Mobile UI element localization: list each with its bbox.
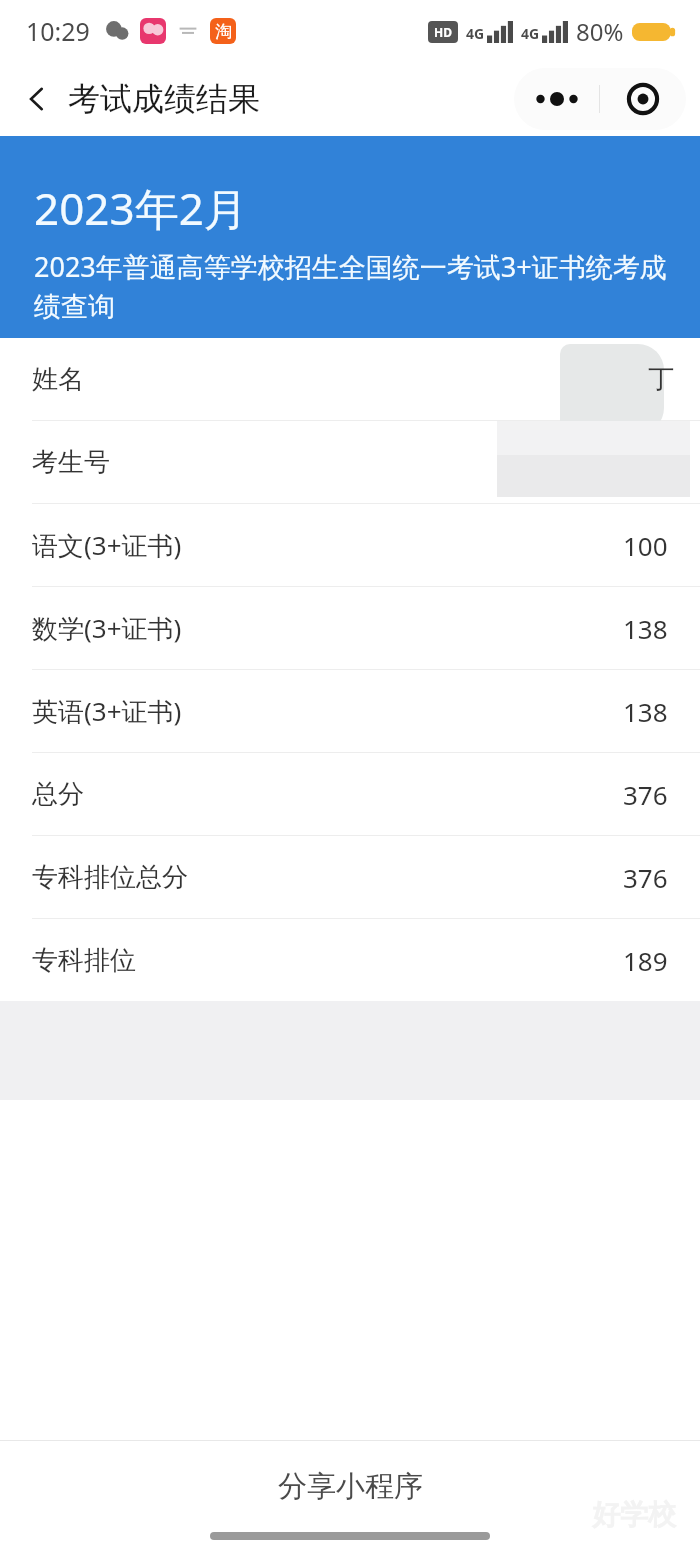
staticText: 2023年普通高等学校招生全国统一考试3+证书统考成绩查询 (34, 248, 672, 324)
staticText: 总分 (32, 778, 84, 811)
staticText: 100 (623, 528, 668, 563)
staticText: 专科排位总分 (32, 861, 188, 894)
button[interactable]: Back (0, 71, 270, 127)
staticText: HD (434, 24, 452, 40)
staticText: 80% (576, 15, 624, 48)
staticText: 138 (623, 611, 668, 646)
staticText: 语文(3+证书) (32, 527, 182, 563)
staticText: 淘 (215, 21, 232, 42)
button[interactable]: 数学(3+证书) (0, 587, 700, 669)
staticText: 189 (623, 943, 668, 978)
staticText: 138 (623, 694, 668, 729)
button[interactable]: 姓名 (0, 338, 700, 420)
staticText: 2023年2月 (34, 178, 248, 238)
staticText: 10:29 (26, 14, 90, 48)
staticText: 考试成绩结果 (68, 79, 260, 119)
staticText: 4G (521, 24, 540, 43)
other: Back (22, 84, 52, 114)
staticText: 分享小程序 (278, 1468, 423, 1505)
staticText: 姓名 (32, 363, 84, 396)
staticText: 好学校 (592, 1497, 676, 1532)
button[interactable]: More (514, 68, 686, 130)
button[interactable]: 语文(3+证书) (0, 504, 700, 586)
button[interactable]: 英语(3+证书) (0, 670, 700, 752)
button[interactable]: 专科排位 (0, 919, 700, 1001)
staticText: 英语(3+证书) (32, 693, 182, 729)
staticText: 专科排位 (32, 944, 136, 977)
staticText: 考生号 (32, 446, 110, 479)
button[interactable]: 专科排位总分 (0, 836, 700, 918)
staticText: 数学(3+证书) (32, 610, 182, 646)
button[interactable]: 总分 (0, 753, 700, 835)
staticText: 376 (623, 860, 668, 895)
button[interactable]: 考生号 (0, 421, 700, 503)
button[interactable]: 分享小程序 (0, 1441, 700, 1532)
staticText: 4G (466, 24, 485, 43)
other: More (514, 68, 599, 130)
staticText: 丁 (648, 363, 674, 396)
staticText: 376 (623, 777, 668, 812)
other: Close (600, 68, 686, 130)
